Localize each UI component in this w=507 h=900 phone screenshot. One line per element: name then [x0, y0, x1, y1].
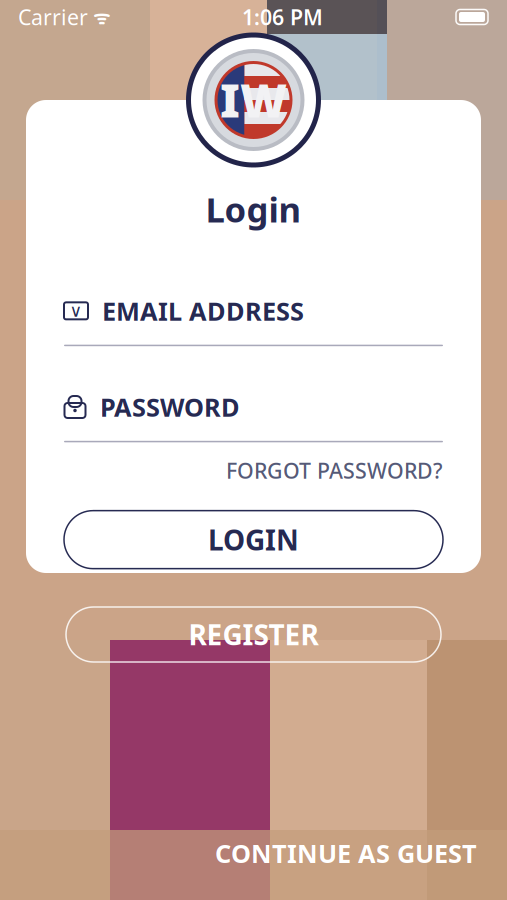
staticText: CONTINUE AS GUEST [215, 836, 477, 870]
button[interactable]: FORGOT PASSWORD? [64, 442, 443, 489]
staticText: LOGIN [208, 521, 299, 558]
button[interactable]: CONTINUE AS GUEST [215, 836, 477, 870]
staticText: Login [205, 186, 301, 232]
button[interactable]: REGISTER [66, 607, 441, 662]
staticText: 1:06 PM [242, 3, 323, 31]
staticText: EMAIL ADDRESS [102, 294, 304, 328]
button[interactable]: LOGIN [64, 511, 443, 569]
staticText: ∨ [69, 301, 82, 321]
button[interactable]: ∨ [64, 294, 443, 328]
staticText: REGISTER [188, 616, 318, 653]
staticText: PASSWORD [100, 390, 240, 424]
staticText: FORGOT PASSWORD? [226, 456, 443, 485]
staticText: ᯤ [88, 5, 110, 29]
staticText: IW [220, 70, 287, 130]
staticText: Carrier [18, 3, 88, 31]
button[interactable]: PASSWORD [64, 390, 443, 424]
